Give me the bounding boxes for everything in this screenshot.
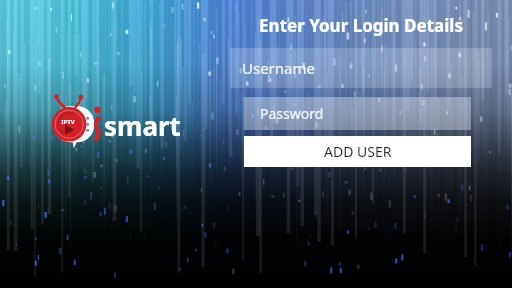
staticText: Username (242, 58, 315, 78)
other: IPTV Smart logo (44, 100, 174, 144)
staticText: Password (260, 104, 324, 123)
button[interactable]: ADD USER (244, 136, 471, 167)
button[interactable]: Username (230, 48, 492, 88)
staticText: Enter Your Login Details (259, 14, 463, 37)
staticText: smart (104, 108, 181, 143)
button[interactable]: Password (244, 97, 471, 130)
staticText: ADD USER (324, 142, 392, 161)
staticText: IPTV (61, 118, 75, 126)
